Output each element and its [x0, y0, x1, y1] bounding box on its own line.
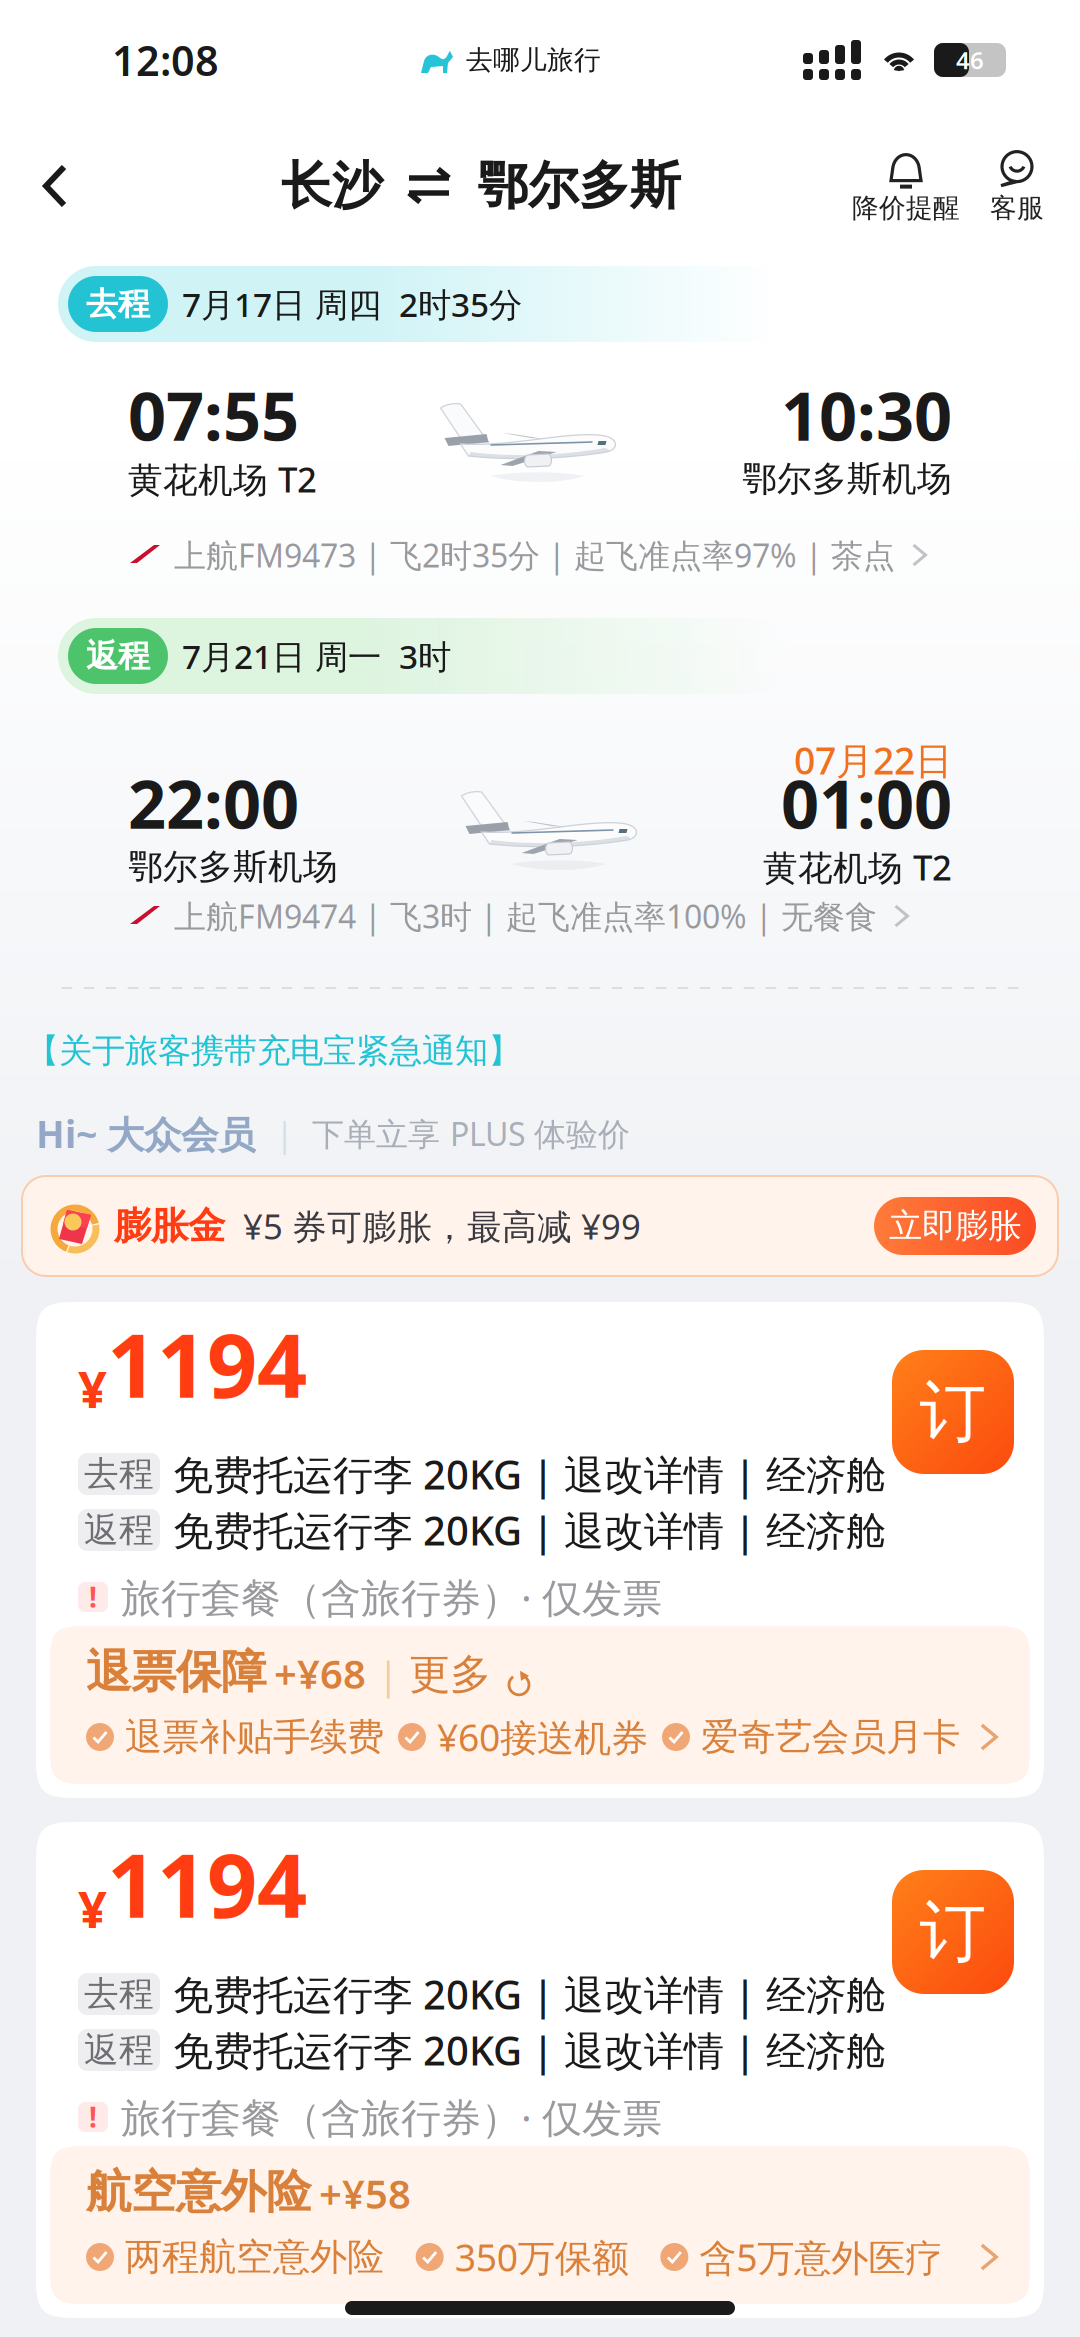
staticText: 350万保额 [455, 2232, 629, 2282]
staticText: 黄花机场 T2 [128, 456, 317, 502]
staticText: 订 [919, 1891, 986, 1973]
button[interactable]: 上航FM9474 | 飞3时 | 起飞准点率100% | 无餐食 [0, 891, 1080, 941]
staticText: 【关于旅客携带充电宝紧急通知】 [26, 1030, 521, 1071]
button[interactable]: 订 [892, 1350, 1014, 1474]
button[interactable]: 上航FM9473 | 飞2时35分 | 起飞准点率97% | 茶点 [0, 530, 1080, 580]
staticText: +¥58 [319, 2167, 411, 2220]
staticText: 上航FM9473 | 飞2时35分 | 起飞准点率97% | 茶点 [174, 534, 895, 576]
button[interactable]: Hi~ 大众会员 [0, 1091, 1080, 1176]
staticText: 客服 [990, 192, 1044, 224]
staticText: 返程 [84, 2029, 154, 2071]
staticText: 黄花机场 T2 [763, 844, 952, 890]
button[interactable]: 【关于旅客携带充电宝紧急通知】 [0, 1011, 1080, 1091]
staticText: 12:08 [112, 33, 219, 87]
staticText: ¥ [78, 1355, 107, 1422]
staticText: 46 [956, 44, 984, 76]
staticText: 退票保障 [86, 1644, 266, 1700]
staticText: 07:55 [128, 371, 299, 459]
staticText: 返程 [84, 1509, 154, 1551]
staticText: 去哪儿旅行 [466, 44, 601, 76]
staticText: 含5万意外医疗 [699, 2232, 942, 2282]
staticText: 长沙 [281, 155, 383, 217]
staticText: 返程 [86, 636, 150, 676]
staticText: 鄂尔多斯机场 [742, 458, 952, 500]
staticText: ! [89, 2098, 97, 2136]
staticText: 膨胀金 [114, 1203, 225, 1249]
staticText: 免费托运行李 20KG | 退改详情 | 经济舱 [173, 1447, 886, 1500]
staticText: 更多 [409, 1649, 491, 1700]
button[interactable]: 降价提醒 [852, 148, 960, 224]
staticText: ¥5 券可膨胀，最高减 ¥99 [243, 1203, 641, 1249]
button[interactable]: 订 [892, 1870, 1014, 1994]
staticText: ¥ [78, 1875, 107, 1942]
staticText: 上航FM9474 | 飞3时 | 起飞准点率100% | 无餐食 [174, 895, 877, 937]
staticText: ¥60接送机券 [437, 1712, 648, 1762]
staticText: 旅行套餐（含旅行券）· 仅发票 [121, 1570, 662, 1623]
button[interactable]: 客服 [990, 148, 1044, 224]
staticText: +¥68 [274, 1647, 366, 1700]
staticText: 立即膨胀 [889, 1205, 1021, 1246]
button[interactable]: 航空意外险 [50, 2146, 1030, 2304]
staticText: 爱奇艺会员月卡 [701, 1714, 960, 1760]
staticText: 订 [919, 1371, 986, 1453]
staticText: 退票补贴手续费 [125, 1714, 384, 1760]
staticText: 两程航空意外险 [125, 2234, 384, 2280]
staticText: 01:00 [781, 759, 952, 847]
staticText: Hi~ 大众会员 [36, 1109, 255, 1158]
staticText: 07月22日 [794, 735, 952, 785]
staticText: 免费托运行李 20KG | 退改详情 | 经济舱 [173, 1967, 886, 2020]
staticText: 7月21日 周一 3时 [182, 634, 451, 678]
button[interactable]: 退票保障 [50, 1626, 1030, 1784]
staticText: | [275, 1110, 294, 1156]
button[interactable]: Back [0, 131, 110, 241]
button[interactable]: 膨胀金 [22, 1176, 1058, 1276]
staticText: 航空意外险 [86, 2164, 311, 2220]
staticText: 去程 [84, 1453, 154, 1495]
staticText: 去程 [86, 284, 150, 324]
staticText: 下单立享 PLUS 体验价 [312, 1112, 630, 1155]
staticText: 去程 [84, 1973, 154, 2015]
staticText: 1194 [107, 1305, 307, 1422]
staticText: 10:30 [781, 371, 952, 459]
staticText: 7月17日 周四 2时35分 [182, 282, 522, 326]
staticText: 免费托运行李 20KG | 退改详情 | 经济舱 [173, 2023, 886, 2076]
staticText: | [378, 1650, 399, 1700]
staticText: 降价提醒 [852, 192, 960, 224]
staticText: ! [89, 1578, 97, 1616]
staticText: 1194 [107, 1825, 307, 1942]
staticText: 旅行套餐（含旅行券）· 仅发票 [121, 2090, 662, 2143]
staticText: 22:00 [128, 759, 299, 847]
staticText: 鄂尔多斯机场 [128, 846, 338, 888]
staticText: 免费托运行李 20KG | 退改详情 | 经济舱 [173, 1503, 886, 1556]
staticText: 鄂尔多斯 [477, 155, 681, 217]
